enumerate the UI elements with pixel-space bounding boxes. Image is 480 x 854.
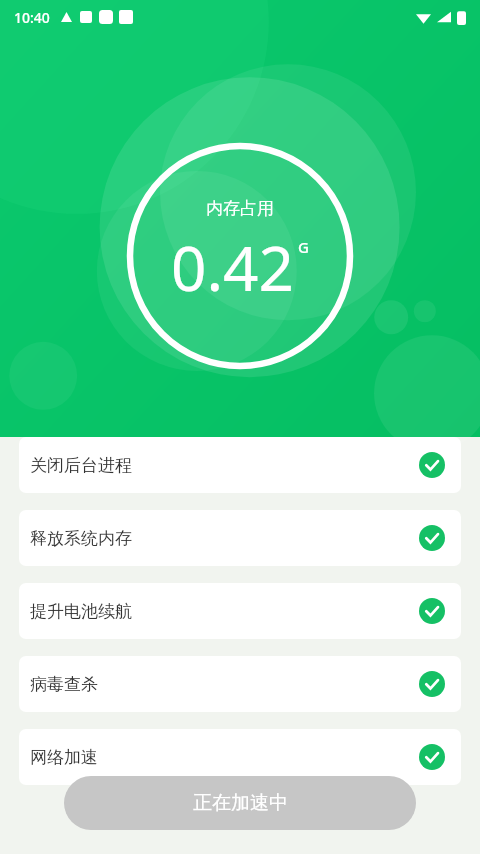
other: Completed [419, 744, 445, 770]
button[interactable]: 病毒查杀 [19, 656, 461, 712]
other: Completed [419, 525, 445, 551]
button[interactable]: 正在加速中 [64, 776, 416, 830]
staticText: 网络加速 [30, 747, 98, 768]
staticText: 关闭后台进程 [30, 455, 132, 476]
staticText: G [298, 237, 309, 257]
staticText: 内存占用 [206, 198, 274, 219]
other: Completed [419, 598, 445, 624]
button[interactable]: 提升电池续航 [19, 583, 461, 639]
staticText: 0.42 [171, 225, 295, 309]
button[interactable]: 关闭后台进程 [19, 437, 461, 493]
other: Completed [419, 452, 445, 478]
staticText: 释放系统内存 [30, 528, 132, 549]
staticText: 病毒查杀 [30, 674, 98, 695]
staticText: 正在加速中 [193, 791, 288, 815]
staticText: 提升电池续航 [30, 601, 132, 622]
other: Completed [419, 671, 445, 697]
button[interactable]: 释放系统内存 [19, 510, 461, 566]
staticText: 10:40 [14, 8, 50, 27]
button[interactable]: 网络加速 [19, 729, 461, 785]
